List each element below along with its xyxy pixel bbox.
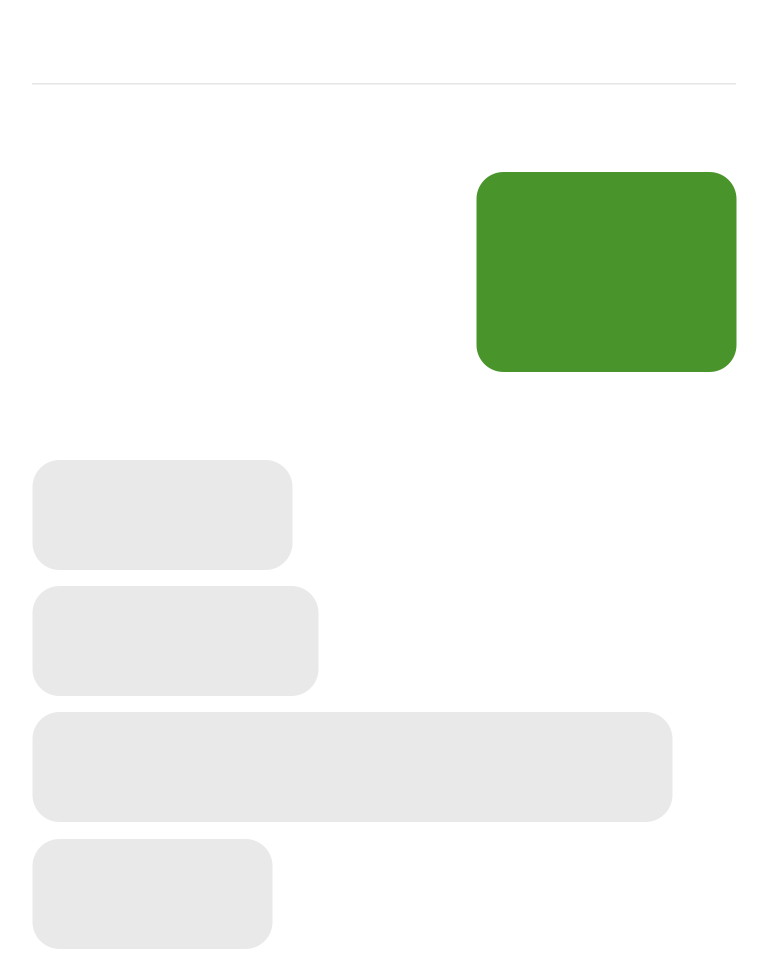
- button[interactable]: Message received: [32, 839, 272, 949]
- button[interactable]: Message received: [32, 586, 318, 696]
- button[interactable]: Message you sent: [476, 172, 736, 372]
- button[interactable]: Message received: [32, 460, 292, 570]
